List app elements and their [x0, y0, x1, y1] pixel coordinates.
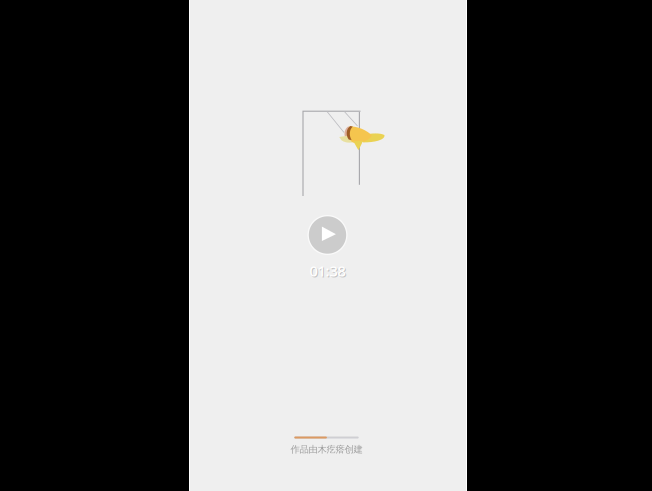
button[interactable]: Play	[307, 215, 347, 255]
staticText: 01:38	[309, 261, 345, 280]
staticText: 01:38	[310, 262, 346, 282]
staticText: 作品由木疙瘩创建	[290, 443, 362, 455]
